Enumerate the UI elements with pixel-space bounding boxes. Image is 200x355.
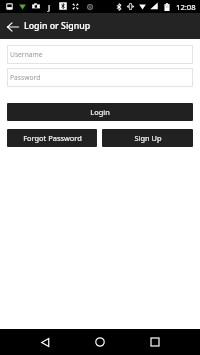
- button[interactable]: Sign Up: [102, 129, 193, 147]
- staticText: 12:08: [176, 2, 196, 12]
- button[interactable]: Home: [89, 331, 111, 353]
- staticText: Login: [90, 107, 110, 117]
- button[interactable]: Login: [7, 103, 193, 121]
- staticText: Forgot Password: [23, 133, 82, 143]
- button[interactable]: Password: [7, 68, 193, 87]
- button[interactable]: Forgot Password: [7, 129, 97, 147]
- button[interactable]: Back: [34, 331, 56, 353]
- staticText: Sign Up: [134, 133, 162, 143]
- staticText: Password: [10, 73, 41, 82]
- staticText: Login or Signup: [24, 20, 91, 32]
- button[interactable]: Back: [0, 13, 25, 39]
- button[interactable]: Username: [7, 45, 193, 64]
- staticText: J: [48, 2, 51, 13]
- button[interactable]: Recent apps: [144, 331, 166, 353]
- staticText: Username: [10, 50, 43, 59]
